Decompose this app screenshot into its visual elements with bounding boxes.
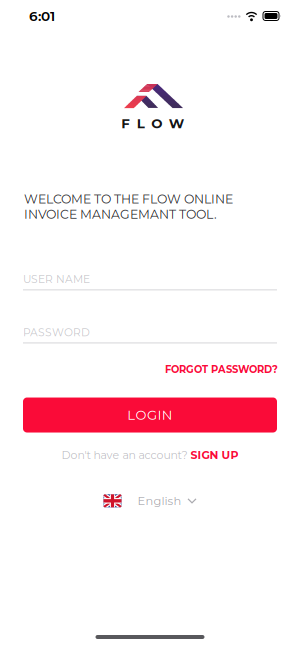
staticText: SIGN UP <box>190 448 238 462</box>
button[interactable]: English <box>103 494 196 508</box>
staticText: FORGOT PASSWORD? <box>165 363 278 375</box>
staticText: PASSWORD <box>23 326 90 339</box>
staticText: FLOW <box>121 115 185 132</box>
staticText: 6:01 <box>29 8 55 24</box>
staticText: Don't have an account? <box>61 448 187 462</box>
button[interactable]: Don't have an account? <box>61 448 238 462</box>
staticText: English <box>137 494 181 508</box>
staticText: USER NAME <box>23 273 90 286</box>
staticText: WELCOME TO THE FLOW ONLINE <box>24 192 233 207</box>
button[interactable]: FORGOT PASSWORD? <box>165 363 278 375</box>
staticText: LOGIN <box>127 407 173 423</box>
staticText: INVOICE MANAGEMANT TOOL. <box>24 207 217 222</box>
button[interactable]: LOGIN <box>23 397 277 432</box>
